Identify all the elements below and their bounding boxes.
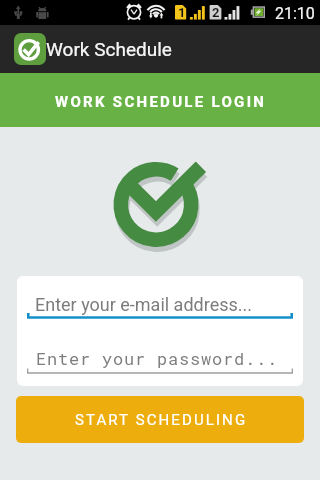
button[interactable]: START SCHEDULING [16, 396, 304, 443]
other: Work Schedule app icon [14, 33, 46, 65]
staticText: Work Schedule [46, 38, 172, 60]
staticText: 1 [178, 5, 186, 20]
staticText: 21:10 [275, 4, 315, 23]
button[interactable]: Enter your password... [27, 345, 293, 374]
staticText: Enter your password... [36, 347, 279, 369]
button[interactable]: Enter your e-mail address... [27, 288, 293, 319]
staticText: WORK SCHEDULE LOGIN [55, 93, 267, 111]
staticText: Enter your e-mail address... [35, 294, 253, 315]
button[interactable]: Work Schedule app icon [0, 25, 320, 73]
staticText: START SCHEDULING [75, 411, 248, 429]
staticText: 2 [212, 5, 220, 20]
